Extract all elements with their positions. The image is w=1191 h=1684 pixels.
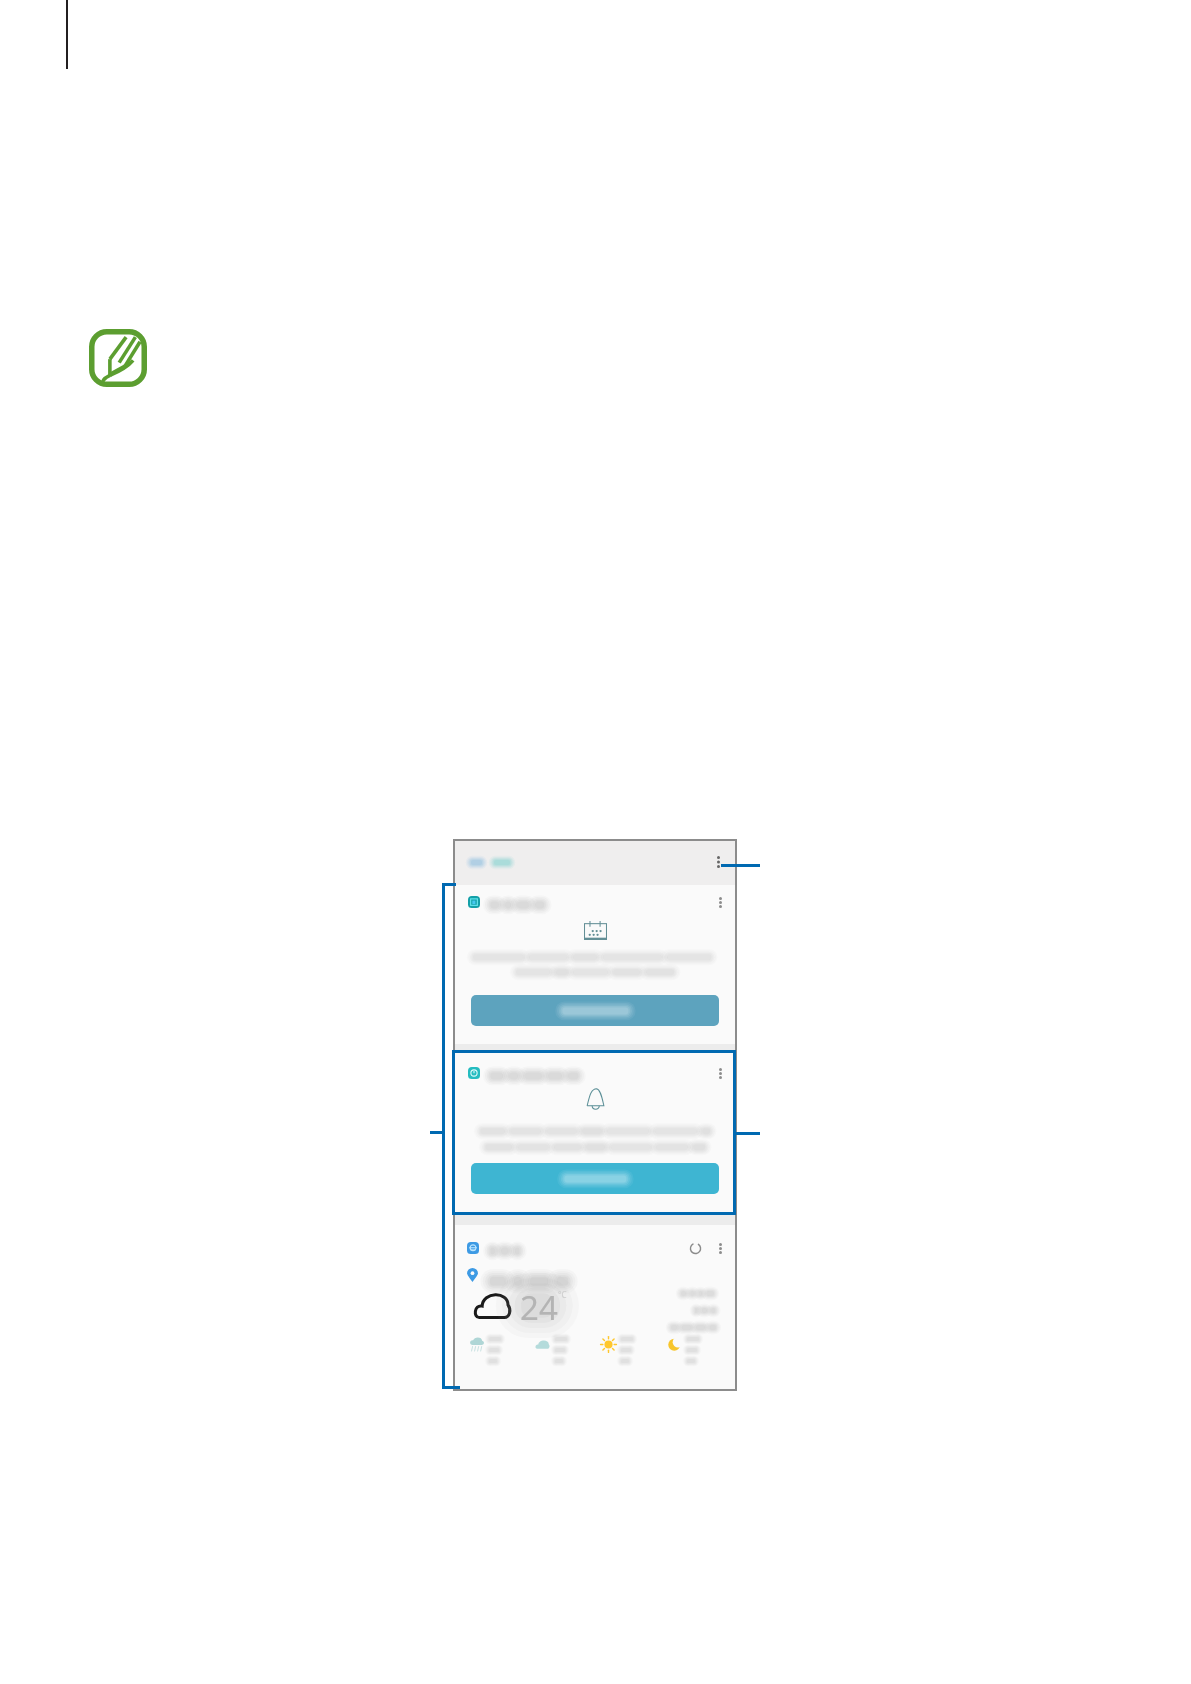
button[interactable]: Bixby Home <box>453 839 737 885</box>
button[interactable]: More options <box>711 1239 729 1257</box>
button[interactable]: More options <box>711 893 729 911</box>
button[interactable]: Weather card <box>453 1225 737 1391</box>
button[interactable]: Open calendar <box>471 995 719 1026</box>
staticText: °C <box>558 1289 567 1300</box>
button[interactable]: More options <box>711 1064 729 1082</box>
button[interactable]: Set a reminder <box>471 1163 719 1194</box>
button[interactable]: Reminder card <box>453 1052 737 1213</box>
button[interactable]: Refresh <box>685 1239 705 1257</box>
button[interactable]: Calendar card <box>453 885 737 1044</box>
staticText: 24 <box>520 1285 558 1327</box>
button[interactable]: More options <box>705 849 731 875</box>
